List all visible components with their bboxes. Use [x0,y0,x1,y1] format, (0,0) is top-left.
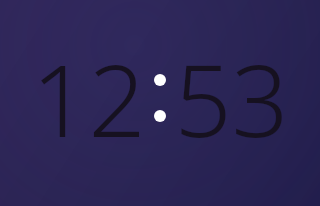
staticText: 12 [31,30,146,166]
button[interactable]: Digital clock, 12:53 [0,0,320,206]
staticText: 53 [174,30,289,166]
